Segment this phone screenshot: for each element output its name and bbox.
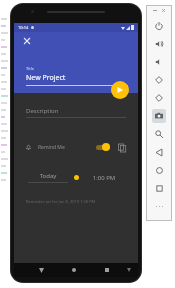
button[interactable]: Rotate left (152, 73, 166, 87)
button[interactable]: Save (111, 81, 129, 99)
button[interactable]: Back (152, 145, 166, 159)
button[interactable]: Zoom (152, 127, 166, 141)
button[interactable]: Power (152, 19, 166, 33)
button[interactable]: Overview (152, 181, 166, 195)
button[interactable]: Home (67, 263, 81, 277)
button[interactable]: Description (26, 107, 126, 118)
button[interactable]: Home (152, 163, 166, 177)
staticText: Reminder set for Jun 8, 2019 1:00 PM (26, 199, 96, 204)
button[interactable]: Volume up (152, 37, 166, 51)
button[interactable]: Take screenshot (152, 109, 166, 123)
button[interactable]: More (152, 199, 166, 213)
staticText: 1:00 PM (84, 174, 124, 182)
button[interactable]: Close (20, 34, 34, 48)
button[interactable]: 1:00 PM (84, 174, 124, 182)
button[interactable]: Copy (116, 142, 127, 153)
button[interactable]: Reminder toggle (96, 143, 110, 151)
button[interactable]: Back (34, 263, 48, 277)
button[interactable]: Close emulator (162, 9, 165, 12)
staticText: Remind Me (38, 144, 65, 151)
button[interactable]: More (124, 265, 134, 275)
button[interactable]: Recent apps (100, 263, 114, 277)
staticText: Description (26, 107, 59, 115)
button[interactable]: Today (28, 172, 68, 183)
staticText: New Project (26, 73, 66, 83)
staticText: Today (28, 172, 68, 180)
button[interactable]: Rotate right (152, 91, 166, 105)
staticText: Title (26, 66, 34, 71)
button[interactable]: Title (26, 66, 128, 86)
button[interactable]: Remind Me (25, 138, 127, 156)
button[interactable]: Volume down (152, 55, 166, 69)
staticText: 10:14 (18, 25, 29, 30)
